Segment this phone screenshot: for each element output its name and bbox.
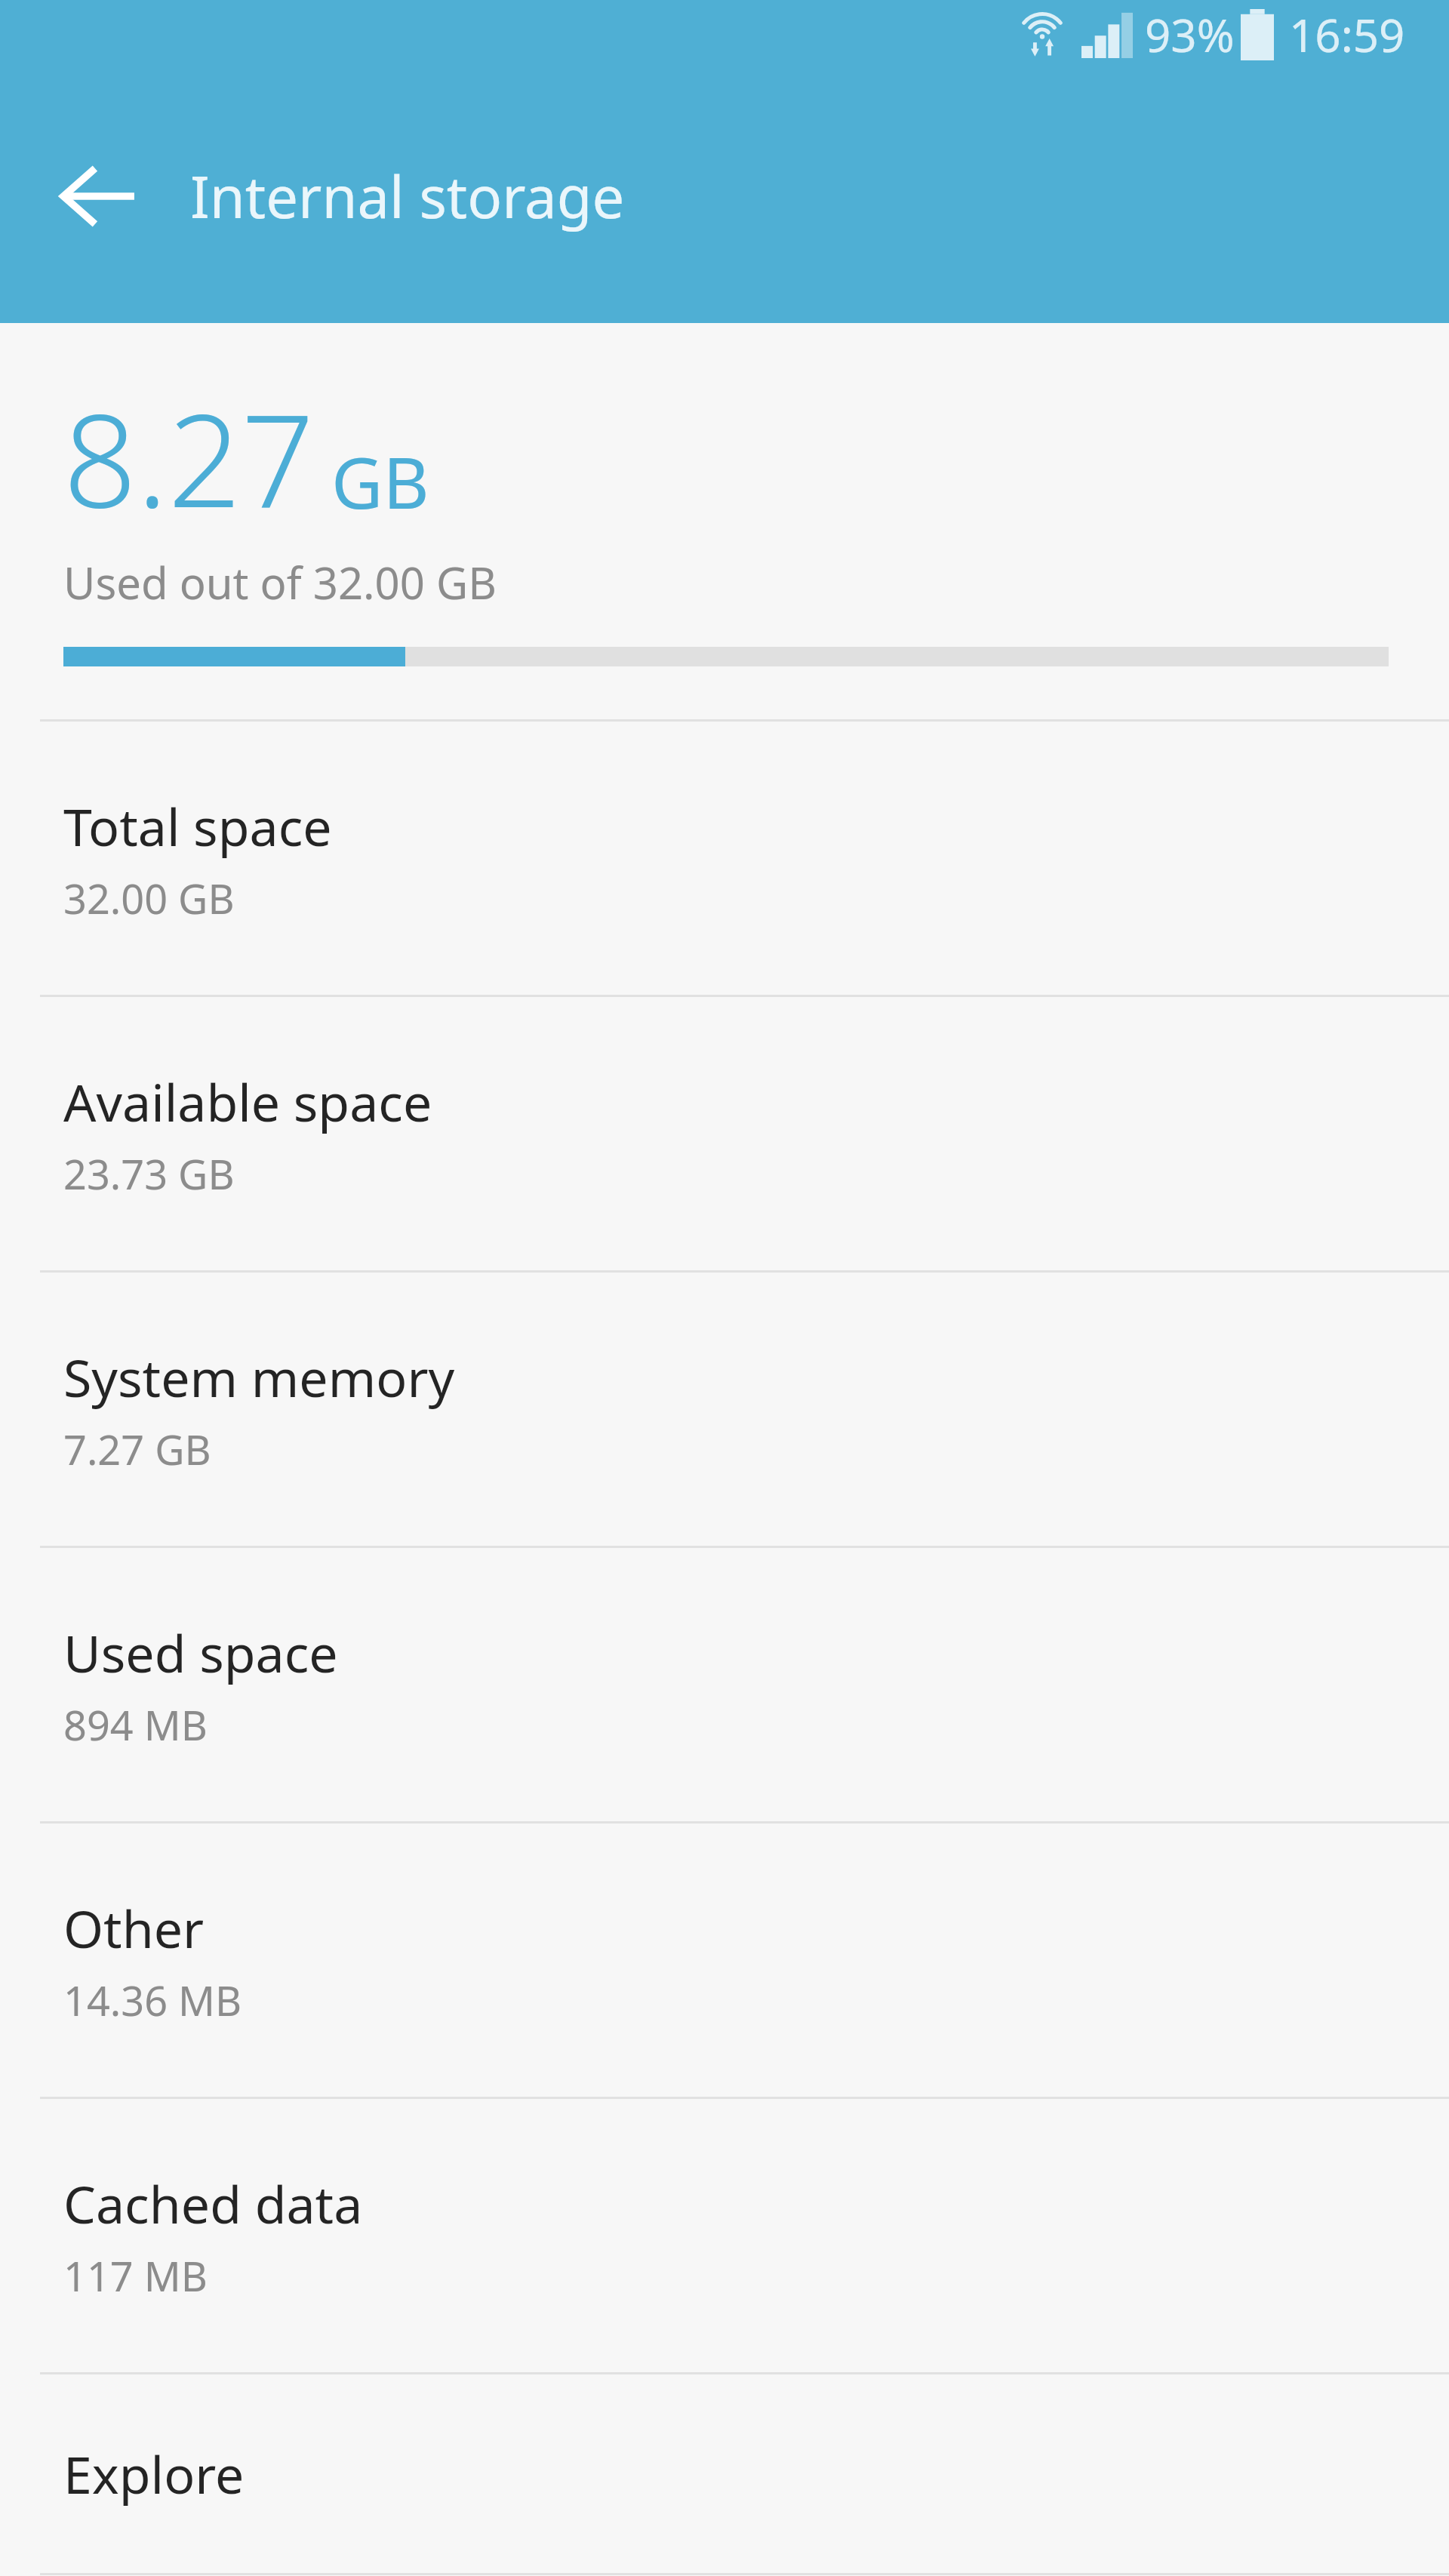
button[interactable]: Total space (0, 722, 1449, 995)
button[interactable]: Available space (0, 997, 1449, 1270)
button[interactable]: Explore (0, 2374, 1449, 2573)
staticText: 14.36 MB (63, 1972, 242, 2028)
staticText: Used out of 32.00 GB (63, 552, 497, 612)
staticText: Total space (63, 791, 332, 861)
staticText: Other (63, 1893, 205, 1963)
staticText: Used space (63, 1617, 338, 1688)
staticText: Explore (63, 2439, 245, 2509)
staticText: System memory (63, 1342, 455, 1412)
staticText: Internal storage (190, 157, 625, 235)
staticText: 894 MB (63, 1697, 208, 1753)
staticText: 93% (1145, 4, 1235, 66)
staticText: 8.27 (63, 370, 315, 545)
button[interactable]: Used space (0, 1548, 1449, 1821)
staticText: 117 MB (63, 2248, 208, 2304)
staticText: 7.27 GB (63, 1421, 211, 1477)
staticText: 16:59 (1289, 4, 1405, 66)
staticText: GB (331, 433, 429, 530)
button[interactable]: Back (30, 128, 166, 264)
staticText: 32.00 GB (63, 870, 235, 926)
button[interactable]: Other (0, 1824, 1449, 2097)
button[interactable]: System memory (0, 1273, 1449, 1546)
button[interactable]: Cached data (0, 2099, 1449, 2372)
staticText: 23.73 GB (63, 1146, 235, 1202)
staticText: Cached data (63, 2168, 363, 2239)
staticText: Available space (63, 1066, 432, 1137)
